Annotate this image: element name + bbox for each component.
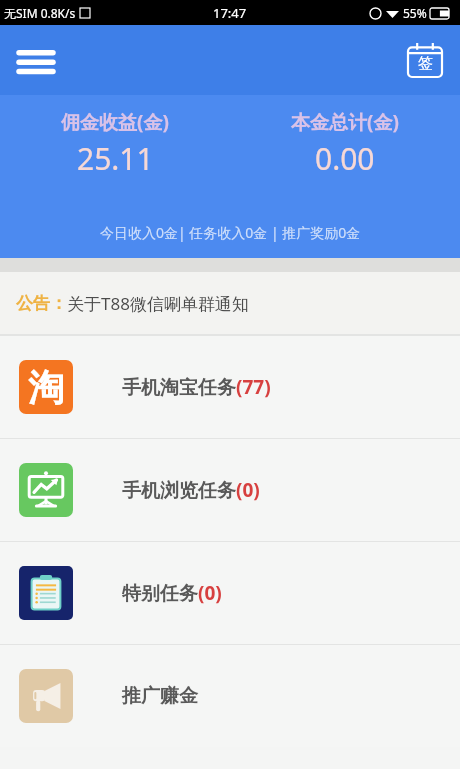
- button[interactable]: 特别任务(0): [0, 542, 460, 644]
- staticText: 25.11: [77, 138, 154, 179]
- staticText: 关于T88微信唰单群通知: [67, 292, 249, 315]
- staticText: 手机淘宝任务(77): [122, 374, 271, 400]
- staticText: 手机浏览任务(0): [122, 477, 260, 503]
- staticText: 推广赚金: [122, 684, 198, 708]
- button[interactable]: 签到 Check in: [402, 37, 448, 83]
- staticText: 17:47: [213, 4, 247, 22]
- staticText: 今日收入0金| 任务收入0金 | 推广奖励0金: [100, 223, 361, 242]
- staticText: 55%: [403, 5, 427, 21]
- staticText: 淘: [28, 365, 64, 410]
- staticText: 公告：: [16, 293, 67, 314]
- button[interactable]: 手机浏览任务(0): [0, 439, 460, 541]
- staticText: 佣金收益(金): [61, 109, 169, 135]
- button[interactable]: 公告：: [0, 272, 460, 334]
- staticText: 签: [418, 54, 433, 73]
- button[interactable]: 淘: [0, 336, 460, 438]
- button[interactable]: Menu: [14, 38, 58, 82]
- staticText: 本金总计(金): [291, 109, 399, 135]
- staticText: 0.00: [315, 138, 375, 179]
- staticText: 无SIM 0.8K/s: [4, 5, 76, 21]
- staticText: 特别任务(0): [122, 580, 222, 606]
- button[interactable]: 推广赚金: [0, 645, 460, 747]
